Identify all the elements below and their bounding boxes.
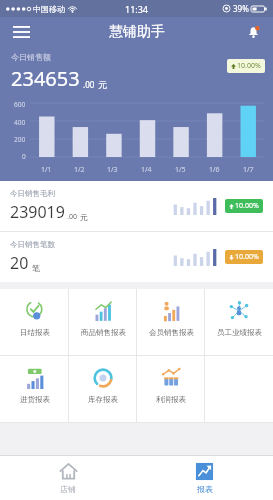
staticText: 利润报表 [156, 395, 186, 404]
button[interactable]: 会员销售报表 [137, 289, 205, 355]
button[interactable]: 进货报表 [0, 356, 69, 422]
staticText: 600 [14, 100, 26, 109]
staticText: 11:34 [125, 3, 149, 15]
staticText: 1/7 [243, 165, 254, 175]
staticText: 200 [14, 135, 26, 144]
button[interactable]: 库存报表 [69, 356, 137, 422]
button[interactable]: 日结报表 [0, 289, 69, 355]
staticText: 元 [80, 212, 88, 222]
staticText: 今日销售毛利 [10, 189, 55, 198]
staticText: 商品销售报表 [81, 328, 126, 337]
staticText: 1/2 [74, 165, 85, 175]
staticText: 店铺 [60, 484, 76, 494]
staticText: 库存报表 [88, 395, 118, 404]
staticText: 今日销售笔数 [10, 240, 55, 249]
staticText: 笔 [32, 263, 40, 273]
staticText: .00 [83, 79, 95, 90]
staticText: .00 [67, 212, 77, 222]
button[interactable]: 报表 [136, 456, 273, 500]
button[interactable]: 今日销售毛利 [0, 181, 273, 231]
staticText: 1/4 [141, 165, 152, 175]
button[interactable]: 员工业绩报表 [205, 289, 273, 355]
staticText: 今日销售额 [11, 52, 51, 62]
staticText: 1/3 [107, 165, 118, 175]
button[interactable]: 利润报表 [137, 356, 205, 422]
button[interactable]: Menu [7, 18, 35, 46]
staticText: 中国移动 [33, 4, 65, 14]
staticText: 日结报表 [20, 328, 50, 337]
button[interactable]: 店铺 [0, 456, 136, 500]
staticText: 会员销售报表 [149, 328, 194, 337]
staticText: 1/1 [41, 165, 52, 175]
staticText: 进货报表 [20, 395, 50, 404]
staticText: 0 [22, 152, 26, 161]
staticText: 慧铺助手 [109, 23, 165, 41]
button[interactable]: Notifications [241, 20, 265, 44]
staticText: 239019 [10, 201, 65, 223]
button[interactable]: 商品销售报表 [69, 289, 137, 355]
staticText: 10.00% [235, 201, 259, 211]
staticText: 1/5 [175, 165, 186, 175]
staticText: 20 [10, 252, 29, 274]
staticText: 元 [98, 79, 107, 90]
staticText: 234653 [11, 65, 80, 92]
staticText: 报表 [197, 484, 213, 494]
staticText: 39% [233, 3, 249, 14]
staticText: 10.00% [235, 252, 259, 262]
staticText: 员工业绩报表 [217, 328, 262, 337]
staticText: 10.00% [237, 61, 261, 71]
staticText: 400 [14, 118, 26, 127]
button[interactable]: 今日销售笔数 [0, 232, 273, 282]
staticText: 1/6 [209, 165, 220, 175]
